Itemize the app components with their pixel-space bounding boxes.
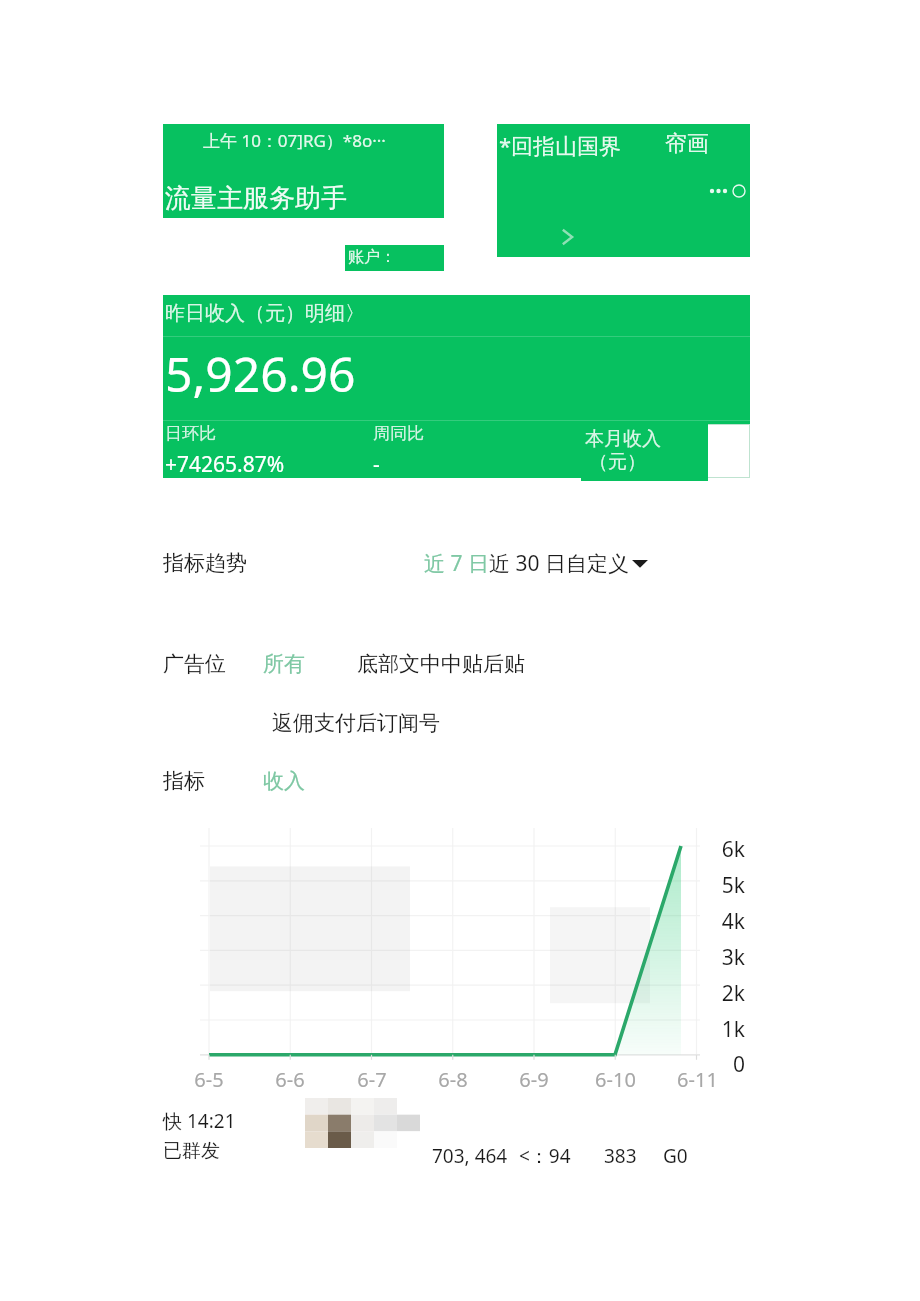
staticText: 底部文中中贴后贴 — [357, 651, 525, 677]
staticText: +74265.87% — [165, 450, 285, 479]
staticText: 6-6 — [275, 1066, 305, 1093]
staticText: 3k — [721, 943, 745, 972]
staticText: 6-5 — [194, 1066, 224, 1093]
button[interactable]: 广告位 — [163, 646, 226, 682]
button[interactable]: Open — [555, 224, 581, 250]
staticText: 本月收入 — [585, 427, 661, 451]
staticText: 指标趋势 — [163, 550, 247, 576]
staticText: G0 — [663, 1143, 688, 1169]
staticText: 6-8 — [438, 1066, 468, 1093]
staticText: 6-9 — [519, 1066, 549, 1093]
staticText: 流量主服务助手 — [165, 182, 347, 215]
button[interactable]: 周同比 — [373, 423, 583, 479]
button[interactable]: 指标 — [163, 763, 205, 799]
staticText: 703, 464 — [432, 1143, 508, 1169]
staticText: 日环比 — [165, 423, 216, 444]
button[interactable]: 近 30 日自定义 — [489, 549, 629, 578]
button[interactable]: 收入 — [263, 763, 305, 799]
staticText: 6k — [721, 835, 745, 864]
button[interactable]: 本月收入 — [581, 424, 708, 481]
button[interactable]: 返佣支付后订闻号 — [272, 705, 440, 741]
button[interactable]: 近 7 日 — [424, 549, 489, 578]
button[interactable]: 账户： — [345, 245, 444, 271]
staticText: <：94 — [519, 1143, 571, 1169]
staticText: （元） — [589, 450, 646, 474]
staticText: 账户： — [348, 247, 396, 267]
staticText: 帘画 — [665, 130, 709, 158]
staticText: 5k — [721, 871, 745, 900]
button[interactable]: 日环比 — [163, 423, 373, 479]
staticText: 4k — [721, 907, 745, 936]
button[interactable]: 指标趋势 — [163, 544, 247, 582]
button[interactable]: 所有 — [263, 646, 305, 682]
staticText: 返佣支付后订闻号 — [272, 710, 440, 736]
staticText: 383 — [604, 1143, 637, 1169]
staticText: 广告位 — [163, 651, 226, 677]
staticText: 6-11 — [677, 1066, 718, 1093]
staticText: *回指山国界 — [499, 130, 622, 160]
staticText: 收入 — [263, 768, 305, 794]
staticText: 快 14:21 — [163, 1108, 236, 1134]
button[interactable]: Expand — [629, 552, 651, 574]
button[interactable]: *回指山国界 — [497, 124, 750, 257]
staticText: 1k — [721, 1015, 745, 1044]
staticText: - — [373, 450, 380, 479]
button[interactable]: More — [706, 181, 746, 201]
staticText: 6-10 — [595, 1066, 636, 1093]
button[interactable]: 底部文中中贴后贴 — [357, 646, 525, 682]
staticText: 0 — [732, 1050, 745, 1079]
staticText: 近 30 日自定义 — [489, 549, 629, 578]
staticText: 昨日收入（元）明细〉 — [165, 301, 365, 326]
staticText: 近 7 日 — [424, 549, 489, 578]
staticText: 周同比 — [373, 423, 424, 444]
staticText: 6-7 — [357, 1066, 387, 1093]
button[interactable]: 上午 10：07]RG）*8o··· — [163, 124, 444, 218]
staticText: 指标 — [163, 768, 205, 794]
staticText: 5,926.96 — [165, 341, 356, 406]
staticText: 2k — [721, 979, 745, 1008]
button[interactable]: 昨日收入（元）明细〉 — [163, 295, 750, 336]
staticText: 上午 10：07]RG）*8o··· — [203, 129, 386, 152]
staticText: 所有 — [263, 651, 305, 677]
staticText: 已群发 — [163, 1139, 220, 1163]
